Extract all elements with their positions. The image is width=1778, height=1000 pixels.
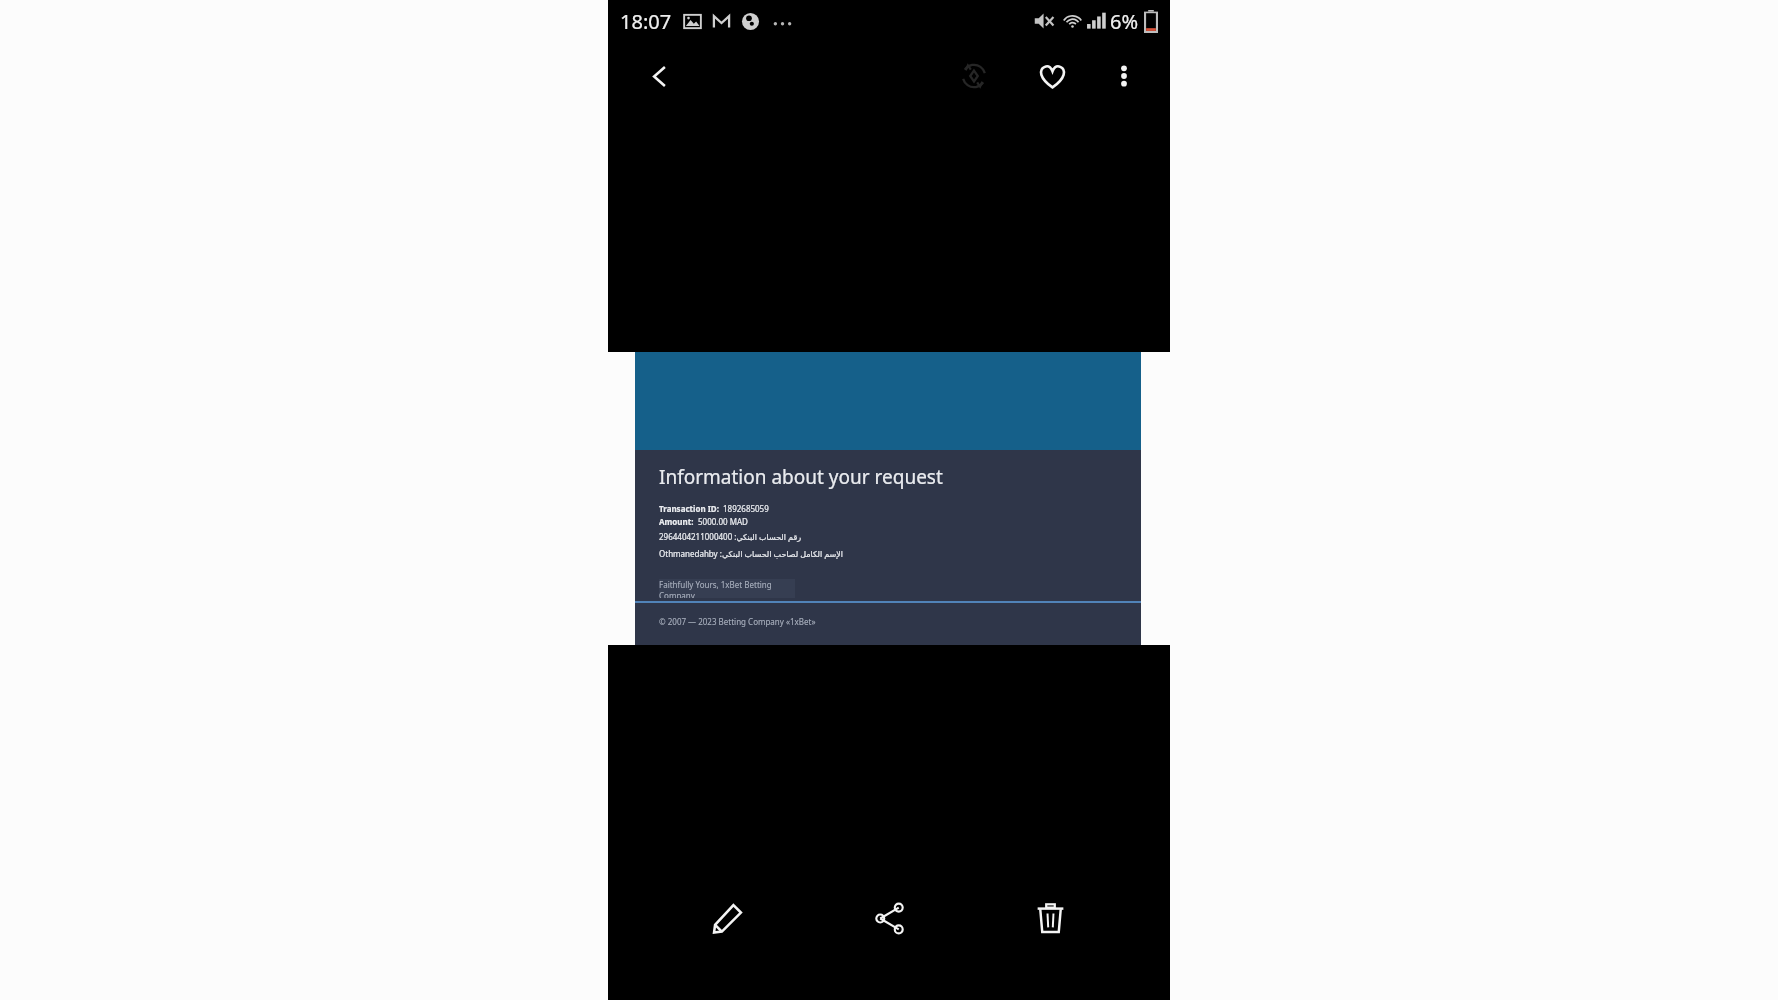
staticText: Transaction ID: bbox=[659, 503, 719, 514]
button[interactable]: More options bbox=[1098, 50, 1150, 102]
staticText: Othmanedahby :الإسم الكامل لصاحب الحساب … bbox=[659, 548, 844, 559]
button[interactable]: Favorite bbox=[1026, 50, 1078, 102]
staticText: 1892685059 bbox=[723, 503, 769, 514]
staticText: 2964404211000400 :رقم الحساب البنكي bbox=[659, 531, 802, 542]
staticText: 6% bbox=[1110, 8, 1139, 35]
staticText: 5000.00 MAD bbox=[698, 516, 748, 527]
staticText: Amount: bbox=[659, 516, 694, 527]
staticText: Information about your request bbox=[659, 464, 943, 490]
button[interactable]: Back bbox=[634, 51, 684, 101]
button[interactable]: Edit bbox=[696, 886, 760, 950]
staticText: Faithfully Yours, 1xBet Betting Company bbox=[659, 579, 795, 598]
button[interactable]: Delete bbox=[1018, 886, 1082, 950]
staticText: © 2007 — 2023 Betting Company «1xBet» bbox=[659, 616, 816, 627]
staticText: 18:07 bbox=[620, 8, 672, 35]
button[interactable]: Auto rotate bbox=[948, 50, 1000, 102]
button[interactable]: Share bbox=[857, 886, 921, 950]
